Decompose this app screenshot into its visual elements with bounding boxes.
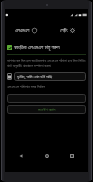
staticText: আপনার কল মিস হলে স্বয়ংক্রিয়ভাবে এসএমএস… <box>7 58 86 68</box>
button[interactable]: Home <box>38 152 56 164</box>
staticText: দুঃখিত, আমি এখন ব্যস্ত আছি <box>17 74 53 79</box>
button[interactable]: দুঃখিত, আমি এখন ব্যস্ত আছি <box>14 72 86 81</box>
staticText: স্বয়ংক্রিয় এসএমএস চালু করুন <box>14 44 60 51</box>
button[interactable] <box>7 94 86 103</box>
button[interactable]: স্বয়ংক্রিয় এসএমএস চালু করুন <box>7 44 86 51</box>
button[interactable]: এসএমএস <box>5 28 46 33</box>
staticText: সংরক্ষণ করুন <box>38 107 56 113</box>
button[interactable]: সংরক্ষণ করুন <box>7 105 86 114</box>
button[interactable]: Emoji <box>7 73 12 80</box>
button[interactable]: সেটিং <box>46 28 88 33</box>
button[interactable]: Back <box>12 152 30 164</box>
staticText: এসএমএস পাঠানোর সময় নির্বাচন <box>7 84 45 89</box>
staticText: এসএমএস <box>15 28 30 33</box>
button[interactable]: Recents <box>63 152 81 164</box>
staticText: সেটিং <box>60 28 68 33</box>
